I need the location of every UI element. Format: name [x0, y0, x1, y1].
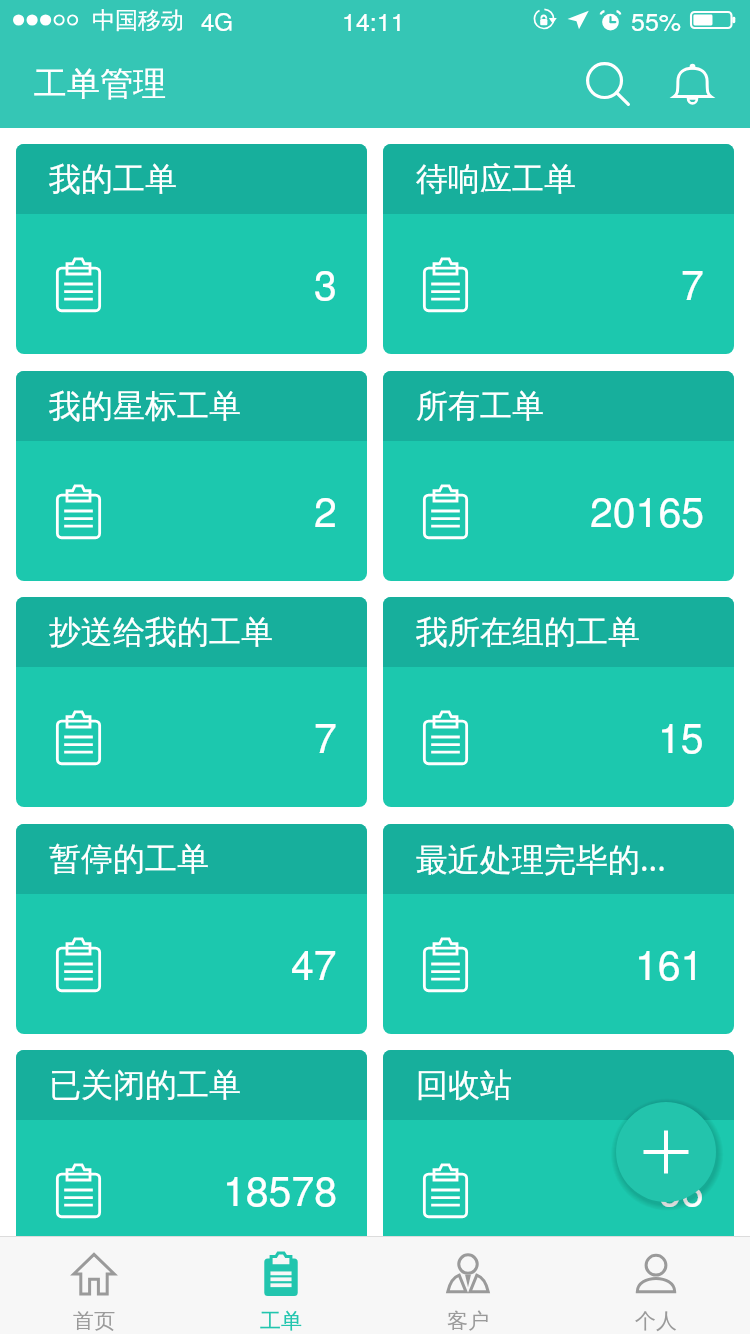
button[interactable]: Notifications	[660, 52, 724, 116]
staticText: 161	[635, 933, 704, 992]
staticText: 暂停的工单	[49, 839, 209, 879]
staticText: 7	[681, 253, 704, 312]
button[interactable]: 我的工单	[16, 144, 367, 354]
button[interactable]: 已关闭的工单	[16, 1050, 367, 1236]
staticText: 个人	[635, 1308, 677, 1334]
staticText: 待响应工单	[416, 159, 576, 199]
button[interactable]: Search	[575, 51, 641, 117]
staticText: 15	[658, 706, 704, 765]
staticText: 7	[314, 706, 337, 765]
button[interactable]: 客户	[374, 1237, 562, 1334]
staticText: 47	[291, 933, 337, 992]
staticText: 中国移动	[92, 6, 184, 35]
button[interactable]: 暂停的工单	[16, 824, 367, 1034]
staticText: 我的星标工单	[49, 386, 241, 426]
button[interactable]: 工单	[187, 1237, 374, 1334]
button[interactable]: 首页	[0, 1237, 187, 1334]
button[interactable]: 我所在组的工单	[383, 597, 734, 807]
button[interactable]: 我的星标工单	[16, 371, 367, 581]
button[interactable]: 回收站	[383, 1050, 734, 1236]
staticText: 首页	[73, 1308, 115, 1334]
staticText: 我的工单	[49, 159, 177, 199]
staticText: 4G	[201, 3, 234, 37]
staticText: 14:11	[342, 2, 405, 38]
button[interactable]: 所有工单	[383, 371, 734, 581]
staticText: 55%	[631, 2, 682, 38]
button[interactable]: 最近处理完毕的...	[383, 824, 734, 1034]
staticText: 所有工单	[416, 386, 544, 426]
staticText: 客户	[447, 1308, 489, 1334]
staticText: 工单管理	[34, 63, 166, 105]
staticText: 18578	[223, 1159, 337, 1218]
staticText: 抄送给我的工单	[49, 612, 273, 652]
staticText: 3	[314, 253, 337, 312]
button[interactable]: Add work order	[610, 1096, 722, 1208]
staticText: 66	[658, 1159, 704, 1218]
staticText: 2	[314, 480, 337, 539]
button[interactable]: 待响应工单	[383, 144, 734, 354]
staticText: 回收站	[416, 1065, 512, 1105]
button[interactable]: 个人	[562, 1237, 750, 1334]
staticText: 我所在组的工单	[416, 612, 640, 652]
staticText: 工单	[260, 1308, 302, 1334]
staticText: 最近处理完毕的...	[416, 837, 666, 881]
staticText: 已关闭的工单	[49, 1065, 241, 1105]
button[interactable]: 抄送给我的工单	[16, 597, 367, 807]
staticText: 20165	[590, 480, 704, 539]
